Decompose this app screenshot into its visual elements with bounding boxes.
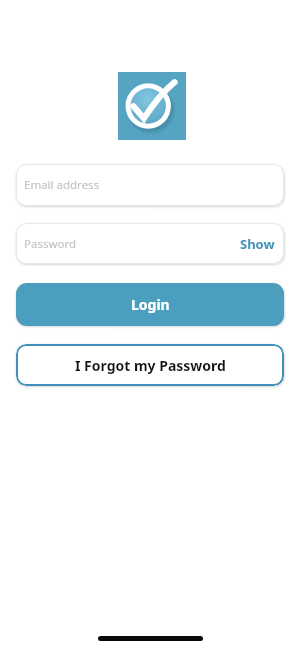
button[interactable]: Password — [16, 223, 284, 264]
staticText: Password — [24, 236, 77, 252]
staticText: Email address — [24, 177, 100, 193]
button[interactable]: Show — [240, 235, 275, 253]
button[interactable]: Email address — [16, 164, 284, 206]
staticText: Login — [131, 295, 170, 314]
staticText: Show — [240, 235, 275, 253]
button[interactable]: I Forgot my Password — [16, 344, 284, 386]
button[interactable]: Login — [16, 283, 284, 326]
staticText: I Forgot my Password — [75, 356, 226, 375]
